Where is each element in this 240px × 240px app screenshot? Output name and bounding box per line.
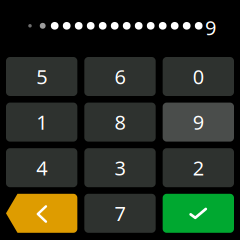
button[interactable]: 7: [84, 194, 156, 233]
staticText: 7: [114, 200, 125, 227]
button[interactable]: Delete: [6, 194, 77, 233]
staticText: 2: [193, 154, 204, 181]
button[interactable]: 1: [6, 103, 77, 142]
staticText: 4: [36, 154, 47, 181]
button[interactable]: 9: [163, 103, 234, 142]
staticText: 0: [193, 63, 204, 90]
staticText: 8: [114, 109, 125, 135]
button[interactable]: 3: [84, 148, 156, 187]
button[interactable]: 2: [163, 148, 234, 187]
button[interactable]: 4: [6, 148, 77, 187]
staticText: 1: [36, 109, 47, 135]
staticText: 5: [36, 63, 47, 90]
button[interactable]: 8: [84, 103, 156, 142]
staticText: 9: [205, 14, 216, 41]
button[interactable]: 5: [6, 57, 77, 96]
staticText: 3: [114, 154, 125, 181]
button[interactable]: Confirm: [163, 194, 234, 233]
button[interactable]: 0: [163, 57, 234, 96]
staticText: 9: [193, 109, 204, 135]
button[interactable]: 6: [84, 57, 156, 96]
staticText: 6: [114, 63, 125, 90]
